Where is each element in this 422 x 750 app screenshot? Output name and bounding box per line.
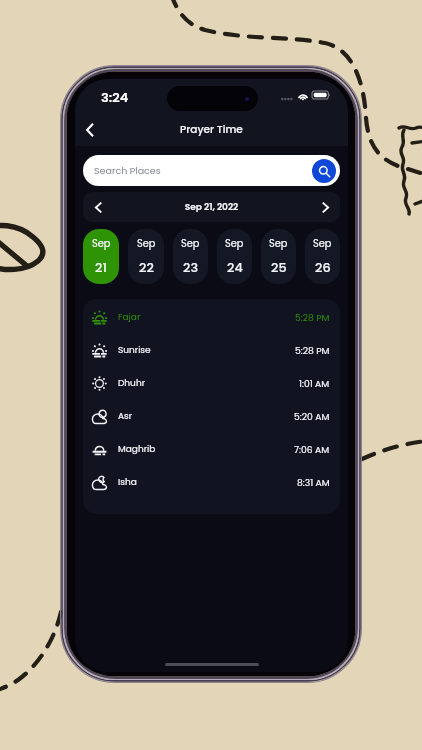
staticText: 23 bbox=[183, 259, 198, 277]
staticText: 7:06 AM bbox=[294, 443, 330, 456]
staticText: Fajar bbox=[118, 311, 141, 324]
staticText: Asr bbox=[118, 410, 133, 423]
staticText: 5:28 PM bbox=[295, 311, 330, 324]
button[interactable]: Previous day bbox=[83, 192, 113, 222]
staticText: Dhuhr bbox=[118, 377, 146, 390]
staticText: Sep bbox=[269, 237, 288, 251]
staticText: 5:28 PM bbox=[295, 344, 330, 357]
staticText: 3:24 bbox=[101, 88, 129, 106]
button[interactable]: Isha bbox=[83, 466, 340, 499]
button[interactable]: Sep bbox=[261, 229, 296, 284]
staticText: 26 bbox=[315, 259, 331, 277]
staticText: Prayer Time bbox=[180, 122, 243, 137]
staticText: Sep bbox=[313, 237, 332, 251]
button[interactable]: Search Places bbox=[83, 155, 340, 186]
staticText: Sep bbox=[92, 237, 111, 251]
staticText: 25 bbox=[271, 259, 287, 277]
button[interactable]: Back bbox=[76, 116, 104, 144]
button[interactable]: Sep bbox=[83, 229, 119, 284]
staticText: Sep bbox=[181, 237, 200, 251]
staticText: Maghrib bbox=[118, 443, 156, 456]
staticText: 21 bbox=[95, 259, 107, 277]
staticText: 22 bbox=[139, 259, 154, 277]
staticText: Isha bbox=[118, 476, 137, 489]
staticText: 8:31 AM bbox=[297, 476, 330, 489]
staticText: 24 bbox=[227, 259, 243, 277]
staticText: Sep bbox=[137, 237, 156, 251]
button[interactable]: Asr bbox=[83, 400, 340, 433]
button[interactable]: Sep bbox=[217, 229, 252, 284]
staticText: 1:01 AM bbox=[299, 377, 330, 390]
button[interactable]: Sep bbox=[128, 229, 164, 284]
button[interactable]: Sunrise bbox=[83, 334, 340, 367]
staticText: Sunrise bbox=[118, 344, 151, 357]
staticText: 5:20 AM bbox=[294, 410, 330, 423]
staticText: Search Places bbox=[94, 164, 161, 177]
button[interactable]: Search bbox=[312, 159, 336, 183]
button[interactable]: Dhuhr bbox=[83, 367, 340, 400]
staticText: Sep bbox=[225, 237, 244, 251]
button[interactable]: Maghrib bbox=[83, 433, 340, 466]
button[interactable]: Next day bbox=[310, 192, 340, 222]
staticText: Sep 21, 2022 bbox=[113, 201, 310, 214]
button[interactable]: Sep bbox=[173, 229, 208, 284]
button[interactable]: Fajar bbox=[83, 301, 340, 334]
button[interactable]: Sep bbox=[305, 229, 340, 284]
